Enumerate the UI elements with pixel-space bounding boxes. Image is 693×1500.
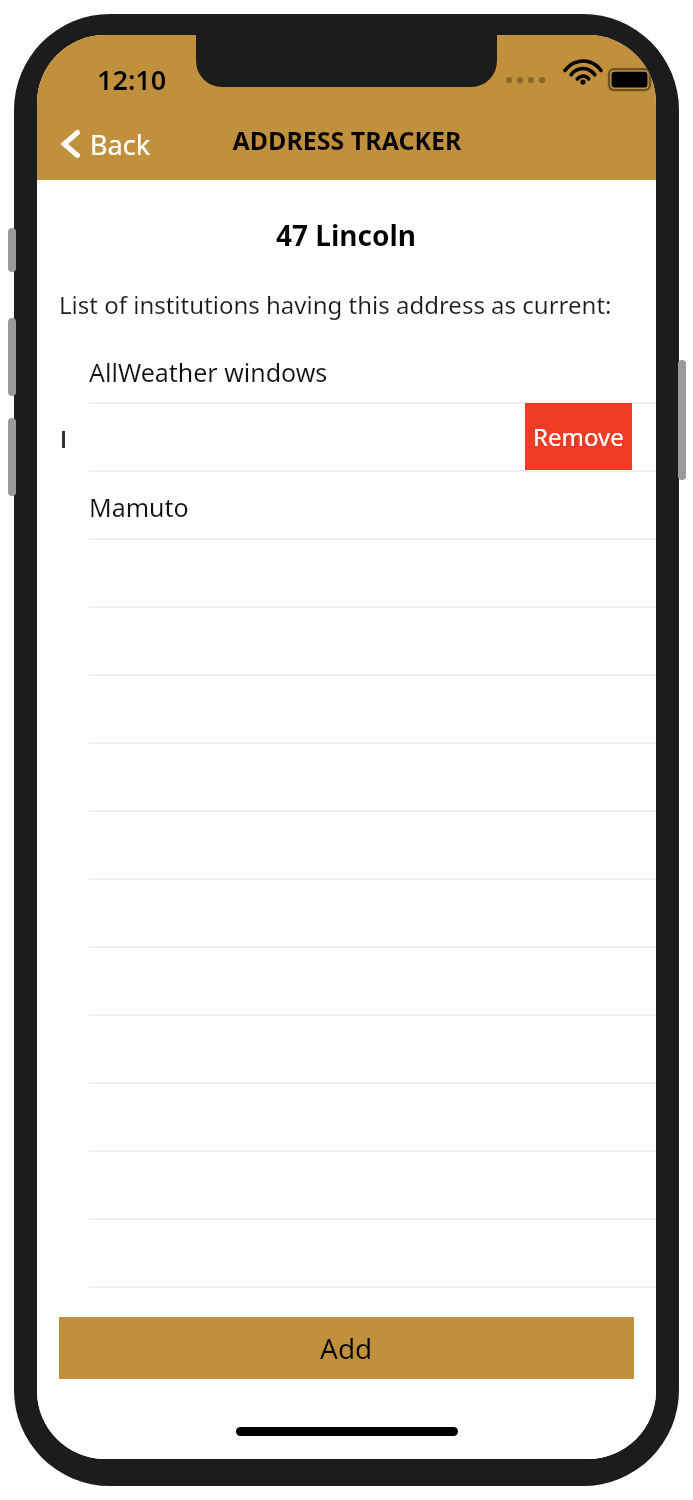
button[interactable]: Back [51,117,165,171]
staticText: Add [320,1329,373,1367]
staticText: ADDRESS TRACKER [232,123,462,157]
staticText: List of institutions having this address… [59,288,612,321]
button[interactable]: AllWeather windows [89,355,332,389]
staticText: Remove [533,420,624,453]
button[interactable]: Mamuto [89,490,193,524]
staticText: Back [90,126,151,163]
staticText: 12:10 [97,61,167,98]
button[interactable]: Remove [525,403,632,470]
staticText: AllWeather windows [89,355,328,389]
button[interactable] [60,403,655,471]
button[interactable]: Add [59,1317,634,1379]
staticText: 47 Lincoln [276,216,417,254]
staticText: Mamuto [89,490,189,524]
